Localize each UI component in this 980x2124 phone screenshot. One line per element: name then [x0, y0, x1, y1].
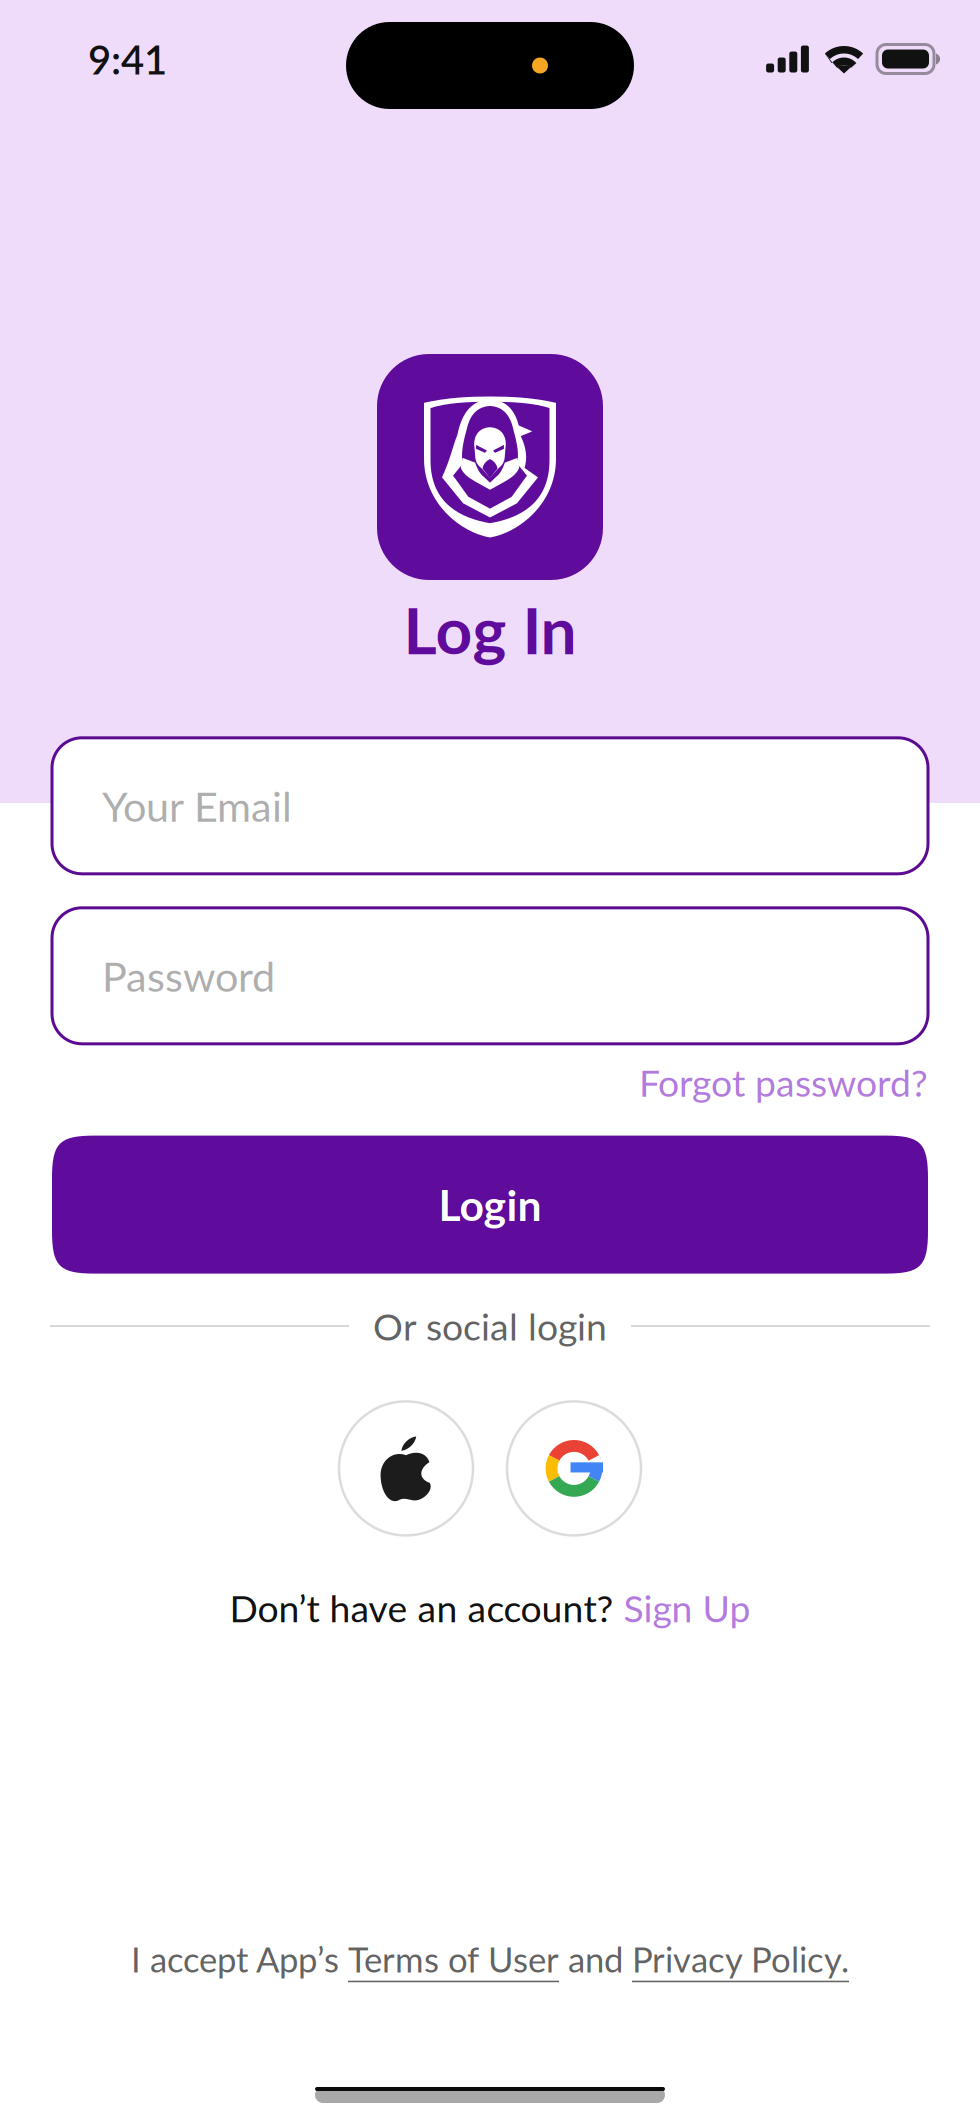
button[interactable]: Sign Up: [623, 1585, 750, 1630]
staticText: Privacy Policy.: [632, 1938, 849, 1980]
button[interactable]: Terms of User: [348, 1938, 559, 1980]
staticText: Password: [102, 951, 275, 1001]
button[interactable]: Privacy Policy.: [632, 1938, 849, 1980]
staticText: Your Email: [102, 781, 292, 831]
staticText: Log In: [403, 591, 576, 668]
staticText: Forgot password?: [639, 1060, 928, 1105]
staticText: I accept App’s: [131, 1938, 348, 1980]
staticText: Terms of User: [348, 1938, 559, 1980]
staticText: Login: [438, 1179, 541, 1230]
staticText: Don’t have an account?: [229, 1585, 623, 1630]
button[interactable]: Sign in with Google: [507, 1401, 641, 1535]
button[interactable]: Sign in with Apple: [339, 1401, 473, 1535]
button[interactable]: Forgot password?: [639, 1060, 928, 1105]
button[interactable]: Login: [52, 1136, 928, 1274]
staticText: Or social login: [373, 1304, 607, 1348]
staticText: and: [559, 1938, 632, 1980]
staticText: Sign Up: [623, 1585, 750, 1630]
staticText: 9:41: [88, 35, 167, 83]
